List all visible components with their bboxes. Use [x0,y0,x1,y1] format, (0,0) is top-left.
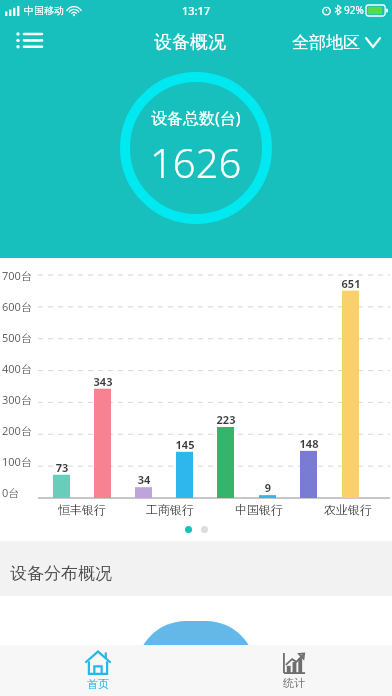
staticText: 343 [89,374,117,389]
staticText: 中国移动 [24,4,64,17]
staticText: 500台 [2,330,32,345]
staticText: 中国银行 [235,502,283,517]
staticText: 200台 [2,423,32,438]
staticText: 223 [212,412,240,427]
staticText: 600台 [2,299,32,314]
staticText: 1626 [150,135,242,189]
staticText: 设备概况 [154,31,226,54]
staticText: 首页 [87,677,109,691]
staticText: 145 [171,437,199,452]
staticText: 设备总数(台) [151,107,241,129]
staticText: 设备分布概况 [10,563,112,584]
button[interactable]: 统计 [196,645,392,696]
staticText: 农业银行 [324,502,372,517]
staticText: 9 [254,480,282,495]
staticText: 148 [295,436,323,451]
staticText: 工商银行 [146,502,194,517]
staticText: 300台 [2,392,32,407]
staticText: 73 [48,460,76,475]
staticText: 92% [344,3,364,17]
staticText: 13:17 [182,3,211,18]
staticText: 34 [130,472,158,487]
staticText: 100台 [2,454,32,469]
staticText: 400台 [2,361,32,376]
staticText: 700台 [2,268,32,283]
staticText: 统计 [283,676,305,690]
button[interactable]: Menu [10,23,48,61]
button[interactable]: 全部地区 [290,28,382,57]
staticText: 651 [337,276,365,291]
staticText: 0台 [2,485,20,500]
staticText: 全部地区 [292,32,360,53]
button[interactable]: 首页 [0,645,196,696]
staticText: 恒丰银行 [58,502,106,517]
